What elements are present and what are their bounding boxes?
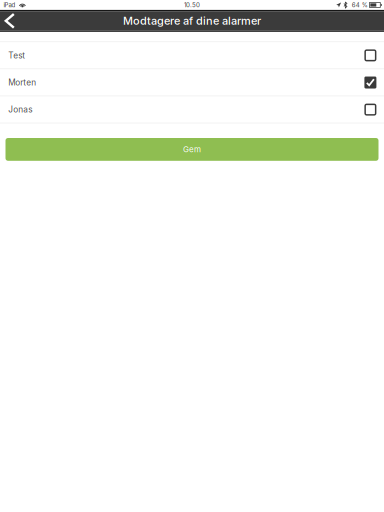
staticText: Morten [8, 77, 36, 87]
staticText: Jonas [8, 105, 32, 115]
staticText: 64 % [352, 1, 368, 9]
button[interactable]: Back [0, 11, 30, 30]
button[interactable]: Morten [0, 69, 384, 96]
button[interactable]: Test [0, 42, 384, 69]
button[interactable]: Gem [5, 138, 378, 161]
button[interactable]: Jonas [0, 96, 384, 124]
staticText: Test [8, 50, 25, 60]
staticText: Modtagere af dine alarmer [123, 14, 261, 27]
staticText: 10.50 [184, 1, 200, 9]
staticText: Gem [183, 145, 201, 154]
staticText: iPad [3, 1, 15, 9]
